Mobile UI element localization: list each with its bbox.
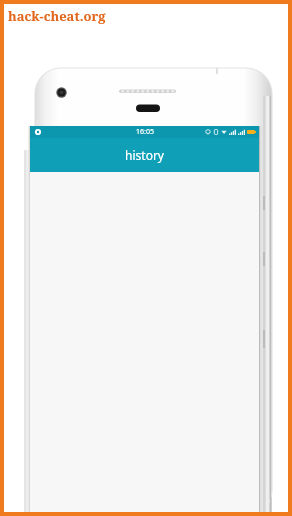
other: Notification <box>34 128 42 136</box>
staticText: hack-cheat.org <box>8 7 106 25</box>
button[interactable]: history <box>30 138 259 172</box>
staticText: 16:05 <box>136 127 154 137</box>
staticText: history <box>125 147 164 163</box>
